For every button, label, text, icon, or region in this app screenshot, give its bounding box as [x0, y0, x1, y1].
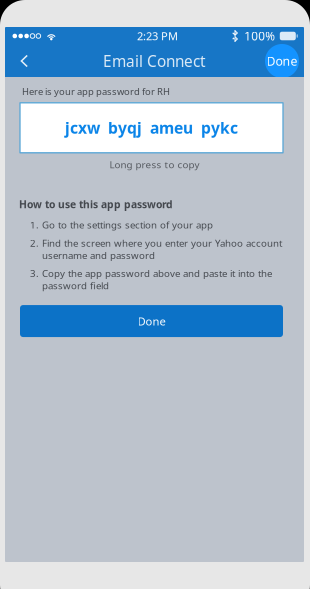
staticText: How to use this app password: [19, 197, 173, 211]
staticText: 1.: [30, 218, 39, 231]
staticText: Long press to copy: [109, 158, 199, 171]
staticText: 3.: [30, 267, 39, 280]
staticText: 2.: [30, 236, 39, 250]
staticText: Done: [137, 313, 165, 329]
staticText: 2:23 PM: [137, 28, 178, 44]
staticText: Here is your app password for RH: [22, 85, 170, 98]
staticText: 100%: [244, 28, 275, 44]
staticText: Go to the settings section of your app: [42, 218, 213, 231]
staticText: jcxw byqj ameu pykc: [65, 117, 238, 138]
button[interactable]: Done: [265, 44, 299, 78]
staticText: Copy the app password above and paste it…: [42, 267, 272, 280]
staticText: Done: [266, 53, 297, 69]
button[interactable]: Back: [8, 45, 40, 77]
button[interactable]: Done: [20, 305, 283, 337]
staticText: Email Connect: [103, 51, 206, 71]
staticText: Find the screen where you enter your Yah…: [42, 236, 282, 250]
staticText: password field: [42, 279, 109, 292]
staticText: username and password: [42, 249, 155, 262]
